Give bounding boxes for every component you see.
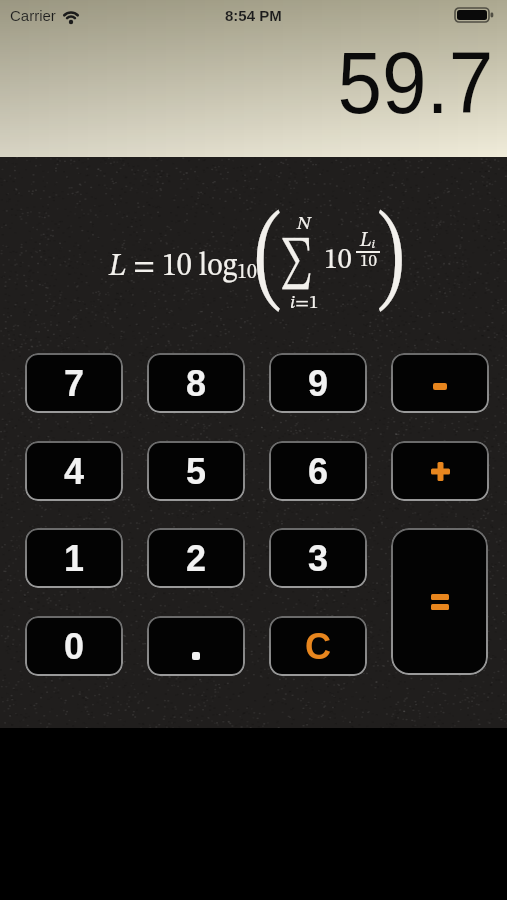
staticText: 6 — [308, 451, 329, 491]
staticText: 1 — [64, 538, 85, 578]
staticText: 8:54 PM — [225, 7, 282, 24]
staticText: C — [305, 626, 331, 666]
staticText: 2 — [186, 538, 207, 578]
button[interactable]: 6 — [269, 441, 367, 501]
button[interactable]: 4 — [25, 441, 123, 501]
button[interactable]: 0 — [25, 616, 123, 676]
staticText: 10 — [324, 247, 352, 275]
button[interactable]: 7 — [25, 353, 123, 413]
staticText: 8 — [186, 363, 207, 403]
button[interactable] — [391, 528, 488, 675]
staticText: 4 — [64, 451, 85, 491]
button[interactable]: 3 — [269, 528, 367, 588]
staticText: ( — [254, 206, 283, 318]
button[interactable]: 5 — [147, 441, 245, 501]
staticText: 59.7 — [337, 33, 494, 131]
staticText: L = 10 log10 — [109, 251, 257, 283]
staticText: i=1 — [290, 294, 319, 313]
button[interactable] — [391, 353, 489, 413]
staticText: ) — [376, 206, 405, 318]
staticText: N — [297, 215, 311, 234]
staticText: 0 — [64, 626, 85, 666]
staticText: 3 — [308, 538, 329, 578]
button[interactable]: 1 — [25, 528, 123, 588]
button[interactable]: 9 — [269, 353, 367, 413]
staticText: 7 — [64, 363, 85, 403]
button[interactable]: C — [269, 616, 367, 676]
staticText: 5 — [186, 451, 207, 491]
staticText: ∑ — [280, 239, 313, 289]
staticText: 9 — [308, 363, 329, 403]
staticText: 10 — [360, 253, 377, 270]
button[interactable] — [147, 616, 245, 676]
button[interactable]: 8 — [147, 353, 245, 413]
button[interactable]: 2 — [147, 528, 245, 588]
staticText: Carrier — [10, 7, 56, 24]
staticText: Li — [360, 231, 376, 251]
button[interactable] — [391, 441, 489, 501]
